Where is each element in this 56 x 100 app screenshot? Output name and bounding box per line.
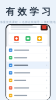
button[interactable] xyxy=(6,69,49,76)
button[interactable] xyxy=(6,62,49,69)
button[interactable] xyxy=(6,77,49,84)
button[interactable] xyxy=(6,54,49,61)
staticText: 名师在线辅导 xyxy=(22,20,40,24)
button[interactable] xyxy=(34,36,45,43)
button[interactable] xyxy=(6,99,49,100)
button[interactable] xyxy=(22,36,34,43)
staticText: 海量优质课程 xyxy=(0,20,18,24)
button[interactable] xyxy=(11,36,22,43)
button[interactable] xyxy=(6,47,49,54)
staticText: 有 效 学 习 xyxy=(5,6,50,17)
button[interactable] xyxy=(6,92,49,99)
button[interactable] xyxy=(8,21,47,32)
staticText: 随时随地 xyxy=(44,20,56,24)
button[interactable] xyxy=(6,84,49,91)
